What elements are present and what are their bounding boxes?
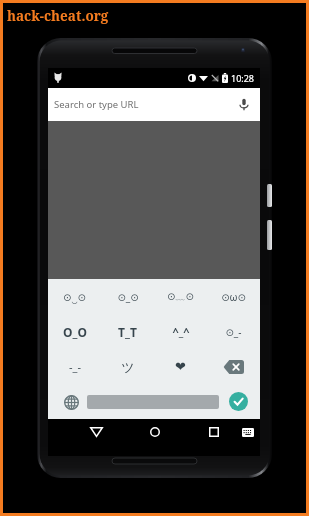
staticText: 10:28	[231, 72, 255, 84]
button[interactable]: ツ	[101, 349, 154, 384]
staticText: ⊙_-	[225, 325, 242, 339]
staticText: ツ	[121, 359, 135, 375]
staticText: ^_^	[172, 324, 190, 339]
button[interactable]: ^_^	[154, 314, 207, 349]
button[interactable]: T_T	[101, 314, 154, 349]
button[interactable]: ⊙ω⊙	[207, 279, 260, 314]
staticText: ❤	[175, 359, 186, 374]
button[interactable]: ⊙_-	[207, 314, 260, 349]
button[interactable]: Switch language	[61, 392, 81, 412]
button[interactable]: ❤	[154, 349, 207, 384]
staticText: Search or type URL	[54, 98, 139, 111]
button[interactable]: Recent apps	[194, 419, 234, 445]
staticText: T_T	[118, 324, 137, 340]
staticText: O_O	[63, 324, 87, 340]
button[interactable]: ⊙_⊙	[101, 279, 154, 314]
button[interactable]: Search or type URL	[48, 88, 260, 121]
staticText: ⊙‿⊙	[63, 290, 86, 304]
staticText: ⊙_⊙	[117, 290, 139, 304]
button[interactable]: Home	[135, 419, 175, 445]
button[interactable]: Back	[76, 419, 116, 445]
button[interactable]: Backspace	[207, 349, 260, 384]
other: Voice search	[239, 98, 249, 111]
button[interactable]: Done	[229, 392, 248, 411]
button[interactable]: ⊙‿⊙	[48, 279, 101, 314]
staticText: hack-cheat.org	[7, 7, 109, 25]
button[interactable]: ⊙﹏⊙	[154, 279, 207, 314]
staticText: ⊙ω⊙	[221, 290, 246, 304]
button[interactable]: O_O	[48, 314, 101, 349]
button[interactable]: Change keyboard	[234, 419, 262, 445]
button[interactable]: -_-	[48, 349, 101, 384]
staticText: -_-	[69, 359, 81, 374]
staticText: ⊙﹏⊙	[167, 290, 194, 303]
